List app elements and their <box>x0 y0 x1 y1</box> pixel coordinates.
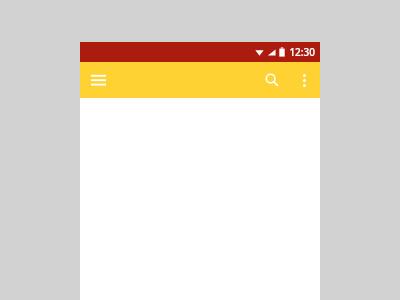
button[interactable]: Search <box>259 67 285 93</box>
staticText: 12:30 <box>289 45 315 59</box>
button[interactable]: More options <box>291 67 317 93</box>
button[interactable]: Open navigation drawer <box>85 67 111 93</box>
